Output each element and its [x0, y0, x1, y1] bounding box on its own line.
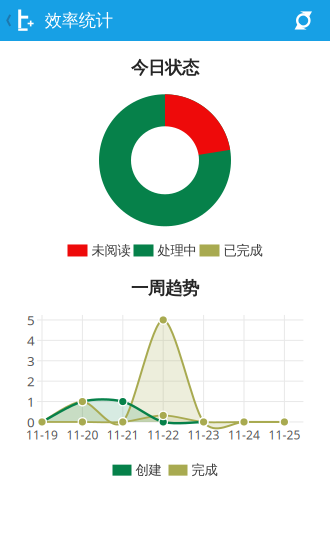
staticText: 11-22 — [147, 427, 179, 443]
staticText: 已完成 — [223, 242, 262, 259]
staticText: 2 — [27, 372, 35, 390]
staticText: 5 — [27, 311, 35, 329]
button[interactable]: Refresh — [280, 0, 330, 41]
staticText: 今日状态 — [131, 57, 199, 78]
staticText: 4 — [27, 331, 35, 349]
button[interactable]: Back — [0, 0, 38, 41]
staticText: 11-25 — [268, 427, 300, 443]
staticText: 11-21 — [107, 427, 139, 443]
staticText: 11-23 — [188, 427, 220, 443]
staticText: 11-24 — [228, 427, 260, 443]
staticText: 完成 — [191, 462, 217, 478]
staticText: 0 — [27, 413, 35, 431]
staticText: 11-19 — [26, 427, 58, 443]
staticText: 3 — [27, 352, 35, 370]
staticText: 1 — [27, 393, 35, 410]
staticText: 创建 — [135, 462, 161, 478]
staticText: 效率统计 — [45, 10, 113, 31]
staticText: 未阅读 — [91, 242, 130, 259]
staticText: 一周趋势 — [131, 278, 199, 299]
staticText: 11-20 — [66, 427, 98, 443]
staticText: 处理中 — [157, 242, 196, 259]
